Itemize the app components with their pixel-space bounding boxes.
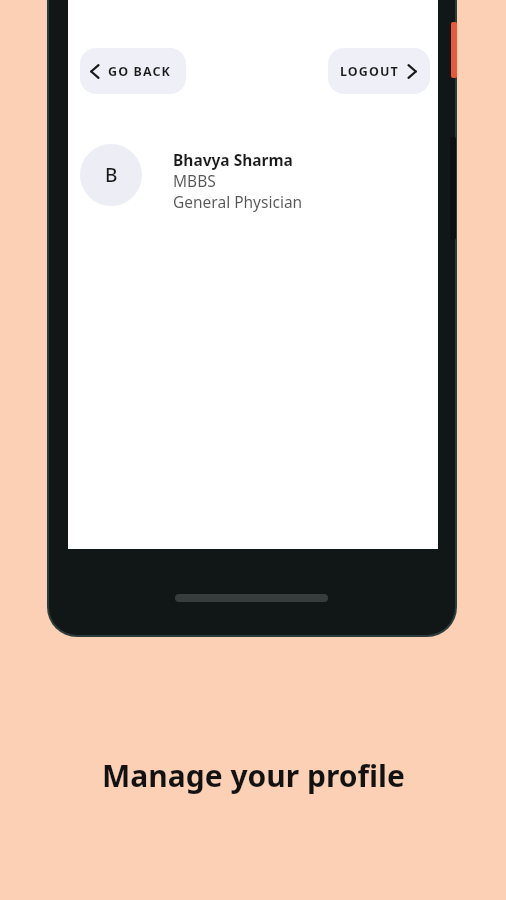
other: Go back <box>90 64 100 79</box>
staticText: GO BACK <box>108 63 171 80</box>
button[interactable]: Go back <box>80 48 186 94</box>
staticText: Manage your profile <box>102 755 405 796</box>
staticText: General Physician <box>173 191 303 212</box>
button[interactable]: LOGOUT <box>328 48 430 94</box>
staticText: Bhavya Sharma <box>173 149 293 170</box>
button[interactable]: B <box>80 143 426 217</box>
other: Logout <box>407 64 417 79</box>
staticText: B <box>105 162 118 188</box>
staticText: LOGOUT <box>340 63 399 80</box>
staticText: MBBS <box>173 170 216 191</box>
